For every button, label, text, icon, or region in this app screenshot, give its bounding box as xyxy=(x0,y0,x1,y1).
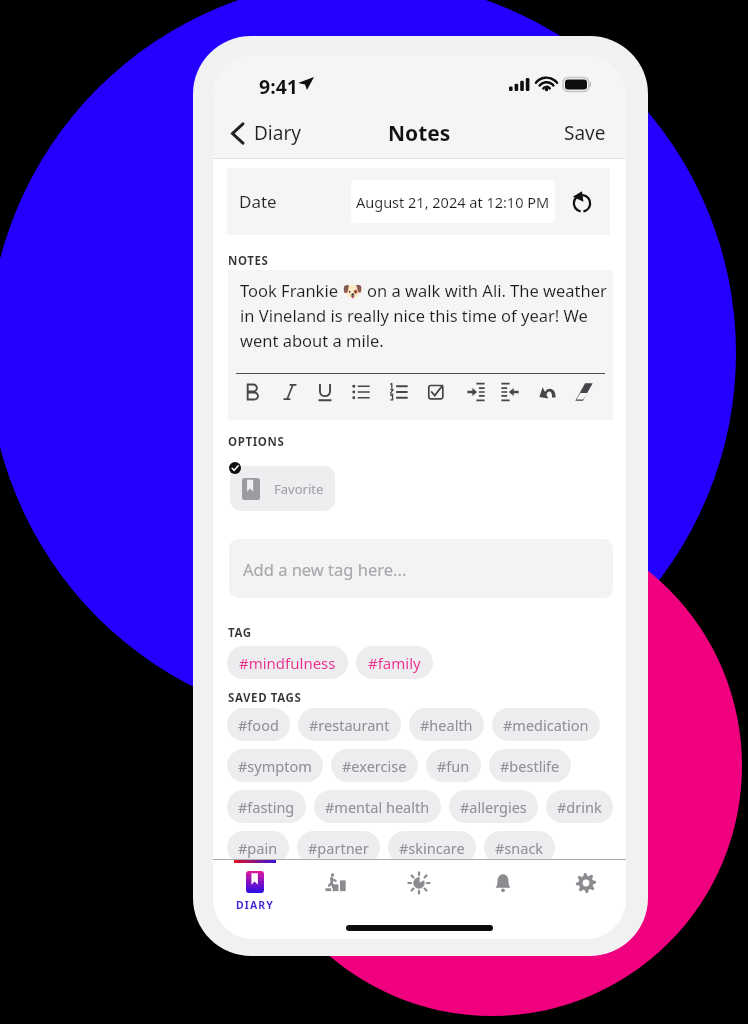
staticText: #allergies xyxy=(460,797,527,817)
button[interactable]: Undo xyxy=(534,378,562,406)
staticText: #restaurant xyxy=(309,715,390,735)
staticText: #food xyxy=(238,715,279,735)
staticText: DIARY xyxy=(236,898,274,912)
button[interactable]: #fasting xyxy=(227,790,306,823)
button[interactable]: #symptom xyxy=(227,749,323,782)
button[interactable]: #snack xyxy=(484,831,555,864)
button[interactable]: #food xyxy=(227,708,290,741)
button[interactable]: #drink xyxy=(546,790,613,823)
button[interactable]: #medication xyxy=(492,708,600,741)
button[interactable]: #skincare xyxy=(388,831,476,864)
staticText: August 21, 2024 at 12:10 PM xyxy=(356,192,550,212)
staticText: SAVED TAGS xyxy=(228,690,302,706)
staticText: 9:41 xyxy=(259,73,298,100)
button[interactable]: Numbered list xyxy=(385,378,413,406)
staticText: Save xyxy=(564,120,606,146)
button[interactable]: #exercise xyxy=(331,749,418,782)
button[interactable]: Add a new tag here... xyxy=(229,539,613,598)
button[interactable]: Bold xyxy=(238,378,266,406)
button[interactable]: Italic xyxy=(276,378,304,406)
staticText: Took Frankie 🐶 on a walk with Ali. The w… xyxy=(240,279,607,351)
button[interactable]: #mental health xyxy=(314,790,441,823)
staticText: #skincare xyxy=(399,838,465,858)
button[interactable]: #bestlife xyxy=(489,749,571,782)
staticText: #mindfulness xyxy=(239,653,336,673)
staticText: #health xyxy=(420,715,473,735)
staticText: TAG xyxy=(228,625,252,641)
staticText: #partner xyxy=(308,838,369,858)
button[interactable]: Underline xyxy=(311,378,339,406)
staticText: #pain xyxy=(238,838,278,858)
button[interactable]: Reset date xyxy=(567,187,597,217)
button[interactable]: #pain xyxy=(227,831,289,864)
button[interactable]: Decrease indent xyxy=(496,378,524,406)
staticText: #fun xyxy=(437,756,470,776)
staticText: Date xyxy=(239,190,277,213)
staticText: OPTIONS xyxy=(228,434,285,450)
button[interactable]: Save xyxy=(526,115,606,151)
button[interactable]: #allergies xyxy=(449,790,538,823)
button[interactable]: #fun xyxy=(426,749,481,782)
button[interactable]: Settings xyxy=(560,860,612,908)
button[interactable]: Clear formatting xyxy=(570,378,598,406)
button[interactable]: Checklist xyxy=(422,378,450,406)
staticText: #mental health xyxy=(325,797,430,817)
button[interactable]: Reminders xyxy=(477,860,529,908)
staticText: #family xyxy=(368,653,421,673)
staticText: Add a new tag here... xyxy=(243,558,407,580)
button[interactable]: #health xyxy=(409,708,484,741)
staticText: NOTES xyxy=(228,253,269,269)
button[interactable]: #partner xyxy=(297,831,380,864)
staticText: Diary xyxy=(254,120,301,146)
button[interactable]: #mindfulness xyxy=(227,646,348,679)
staticText: Notes xyxy=(388,119,451,148)
staticText: #exercise xyxy=(342,756,407,776)
staticText: #symptom xyxy=(238,756,312,776)
button[interactable]: August 21, 2024 at 12:10 PM xyxy=(351,180,555,223)
staticText: #fasting xyxy=(238,797,295,817)
button[interactable]: Activity xyxy=(310,860,362,908)
staticText: #snack xyxy=(495,838,544,858)
button[interactable]: #family xyxy=(356,646,433,679)
staticText: #bestlife xyxy=(500,756,560,776)
button[interactable]: DIARY xyxy=(215,860,295,918)
staticText: #medication xyxy=(503,715,589,735)
button[interactable]: Weather xyxy=(393,860,445,908)
staticText: #drink xyxy=(557,797,602,817)
staticText: Favorite xyxy=(274,480,324,498)
button[interactable]: Diary xyxy=(225,115,307,151)
button[interactable]: Favorite xyxy=(230,466,335,511)
button[interactable]: Bulleted list xyxy=(347,378,375,406)
button[interactable]: #restaurant xyxy=(298,708,401,741)
button[interactable]: Increase indent xyxy=(462,378,490,406)
